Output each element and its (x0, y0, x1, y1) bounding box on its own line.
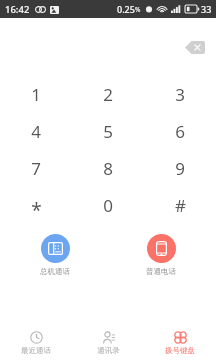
staticText: 33 (201, 3, 212, 15)
staticText: 4 (31, 120, 41, 143)
button[interactable]: 2 (72, 76, 144, 113)
staticText: 0 (103, 194, 113, 217)
staticText: 6 (175, 120, 185, 143)
button[interactable]: 4 (0, 113, 72, 150)
staticText: 普通电话 (146, 267, 176, 276)
staticText: 拨号键盘 (165, 346, 195, 355)
button[interactable]: 5 (72, 113, 144, 150)
staticText: 通讯录 (97, 346, 120, 355)
button[interactable]: 1 (0, 76, 72, 113)
staticText: * (31, 197, 42, 223)
button[interactable]: 9 (144, 150, 216, 187)
staticText: 9 (175, 157, 185, 180)
button[interactable]: 7 (0, 150, 72, 187)
button[interactable]: 6 (144, 113, 216, 150)
staticText: 1 (31, 83, 41, 106)
button[interactable]: 通讯录 (72, 326, 144, 360)
button[interactable]: 0 (72, 187, 144, 224)
staticText: 3 (175, 83, 185, 106)
staticText: 8 (103, 157, 113, 180)
staticText: 16:42 (5, 3, 30, 16)
button[interactable]: # (144, 187, 216, 224)
button[interactable]: 8 (72, 150, 144, 187)
staticText: 总机通话 (40, 267, 70, 276)
button[interactable]: 3 (144, 76, 216, 113)
staticText: 最近通话 (21, 346, 51, 355)
button[interactable]: Backspace (182, 37, 208, 57)
staticText: % (135, 5, 141, 14)
staticText: 2 (103, 83, 113, 106)
staticText: 0.25 (117, 3, 135, 15)
button[interactable]: 普通电话 (130, 234, 192, 276)
button[interactable]: 拨号键盘 (144, 326, 216, 360)
staticText: 5 (103, 120, 113, 143)
button[interactable]: 最近通话 (0, 326, 72, 360)
staticText: 7 (31, 157, 41, 180)
staticText: # (175, 194, 186, 217)
button[interactable]: * (0, 187, 72, 224)
button[interactable]: 总机通话 (24, 234, 86, 276)
